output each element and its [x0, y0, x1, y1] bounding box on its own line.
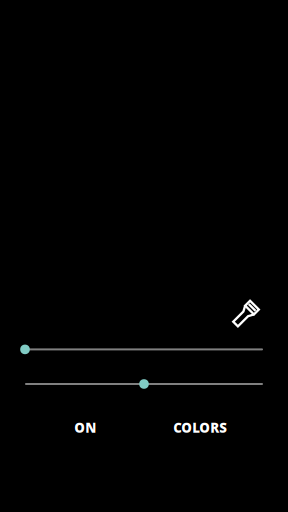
button[interactable]: ON — [28, 419, 143, 436]
button[interactable]: Color — [25, 379, 263, 389]
button[interactable]: COLORS — [143, 419, 258, 436]
staticText: COLORS — [173, 419, 227, 436]
button[interactable]: Flashlight — [228, 298, 262, 332]
staticText: ON — [74, 419, 96, 436]
button[interactable]: Brightness — [25, 345, 263, 354]
